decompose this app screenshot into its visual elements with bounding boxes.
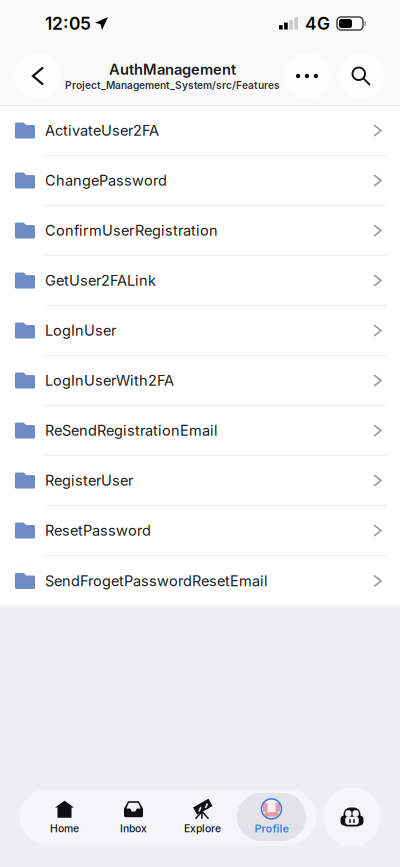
button[interactable]: Search (338, 53, 384, 99)
button[interactable]: Profile (237, 793, 306, 841)
button[interactable]: Explore (168, 793, 237, 841)
staticText: SendFrogetPasswordResetEmail (45, 572, 268, 590)
button[interactable]: GetUser2FALink (0, 256, 400, 306)
staticText: ActivateUser2FA (45, 122, 159, 139)
staticText: ReSendRegistrationEmail (45, 422, 218, 439)
staticText: ConfirmUserRegistration (45, 222, 218, 239)
button[interactable]: ChangePassword (0, 156, 400, 206)
button[interactable]: Inbox (99, 793, 168, 841)
button[interactable]: Home (30, 793, 99, 841)
staticText: Profile (254, 822, 288, 835)
button[interactable]: SendFrogetPasswordResetEmail (0, 556, 400, 606)
button[interactable]: ReSendRegistrationEmail (0, 406, 400, 456)
staticText: 4G (305, 13, 330, 34)
button[interactable]: ActivateUser2FA (0, 106, 400, 156)
staticText: ChangePassword (45, 172, 167, 189)
staticText: Home (50, 822, 79, 835)
button[interactable]: Back (15, 53, 61, 99)
staticText: Explore (184, 822, 221, 835)
staticText: Inbox (120, 822, 147, 835)
staticText: GetUser2FALink (45, 272, 156, 289)
staticText: AuthManagement (109, 60, 236, 78)
button[interactable]: LogInUser (0, 306, 400, 356)
staticText: LogInUserWith2FA (45, 372, 174, 389)
button[interactable]: ResetPassword (0, 506, 400, 556)
button[interactable]: LogInUserWith2FA (0, 356, 400, 406)
button[interactable]: RegisterUser (0, 456, 400, 506)
staticText: ResetPassword (45, 522, 151, 539)
staticText: 12:05 (45, 13, 91, 34)
staticText: RegisterUser (45, 472, 133, 489)
staticText: Project_Management_System/src/Features (65, 79, 280, 91)
staticText: LogInUser (45, 322, 116, 339)
button[interactable]: More options (284, 53, 330, 99)
button[interactable]: ConfirmUserRegistration (0, 206, 400, 256)
button[interactable]: Assistant (323, 788, 381, 846)
